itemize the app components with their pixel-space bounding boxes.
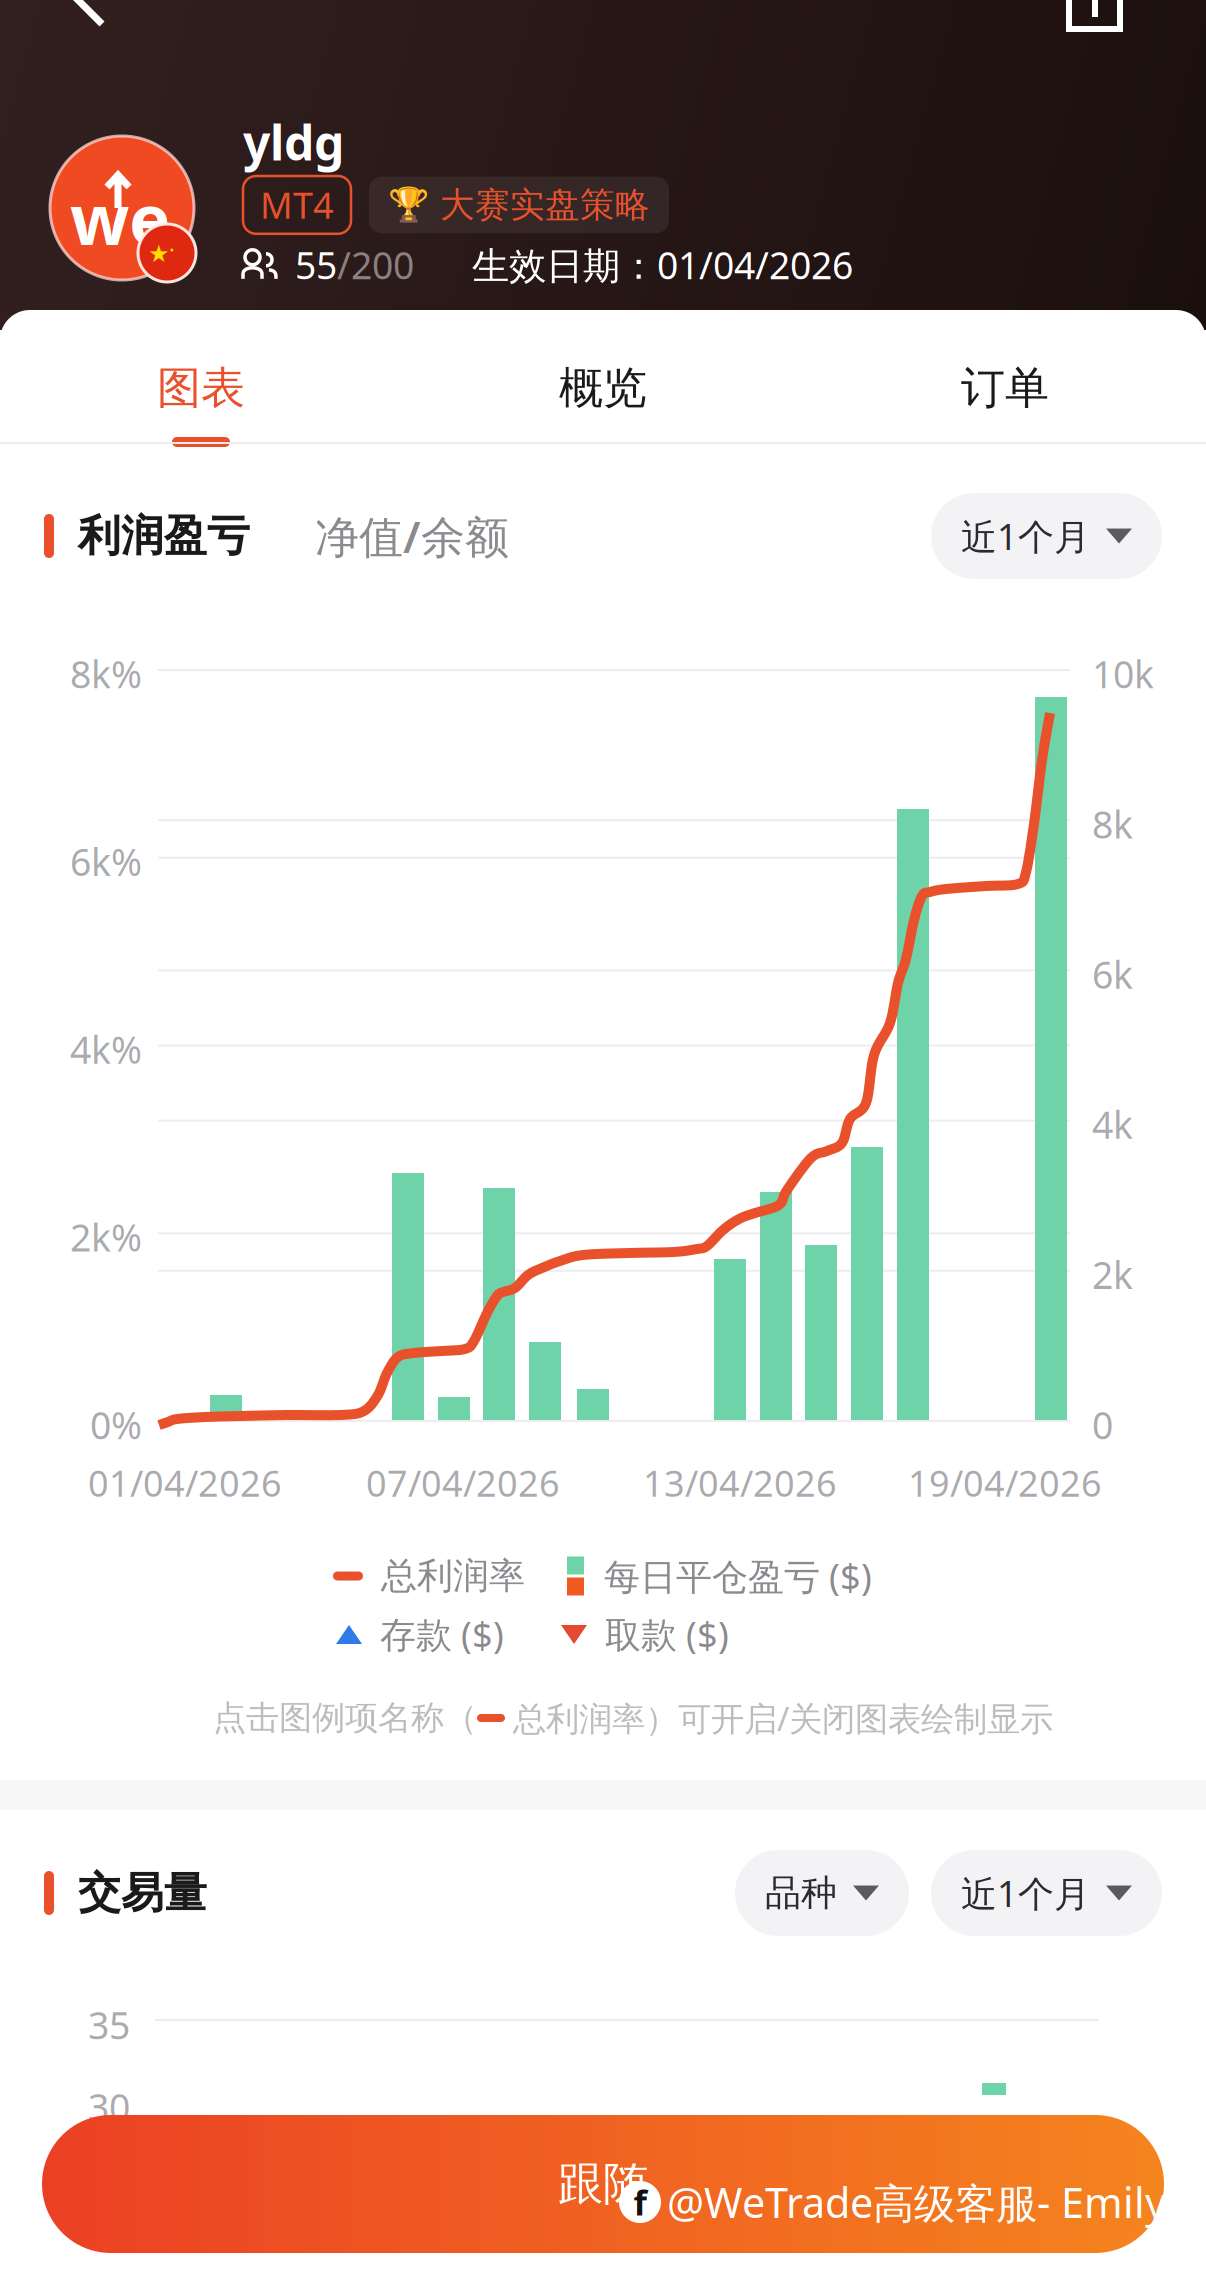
staticText: 交易量	[78, 1867, 207, 1919]
button[interactable]: 总利润率	[333, 1550, 525, 1602]
staticText: 13/04/2026	[643, 1459, 837, 1507]
staticText: 利润盈亏	[78, 510, 250, 562]
button[interactable]: 品种	[735, 1850, 909, 1936]
staticText: 近1个月	[961, 1869, 1090, 1917]
button[interactable]: 图表	[0, 310, 402, 442]
staticText: 总利润率	[381, 1554, 525, 1598]
staticText: 🏆	[388, 186, 430, 224]
staticText: 生效日期：01/04/2026	[472, 240, 853, 290]
button[interactable]: 近1个月	[931, 1850, 1162, 1936]
staticText: 55	[295, 240, 337, 290]
staticText: 概览	[559, 361, 647, 415]
staticText: 19/04/2026	[908, 1459, 1102, 1507]
staticText: 点击图例项名称（	[213, 1697, 477, 1738]
staticText: 存款 ($)	[380, 1610, 504, 1658]
staticText: we	[70, 172, 170, 264]
staticText: 6k	[1092, 949, 1133, 999]
staticText: 8k	[1092, 799, 1133, 849]
staticText: MT4	[260, 181, 334, 229]
button[interactable]: 存款 ($)	[336, 1608, 504, 1660]
button[interactable]: 概览	[402, 310, 804, 442]
button[interactable]: 🏆	[369, 177, 669, 233]
staticText: 近1个月	[961, 512, 1090, 560]
staticText: 2k	[1092, 1250, 1133, 1299]
staticText: 35	[88, 2000, 130, 2050]
staticText: 跟随	[558, 2156, 648, 2212]
staticText: 订单	[961, 361, 1049, 415]
button[interactable]: MT4	[243, 176, 351, 234]
staticText: 01/04/2026	[88, 1459, 282, 1507]
button[interactable]: Share	[1040, 0, 1136, 43]
button[interactable]: 每日平仓盈亏 ($)	[567, 1550, 872, 1602]
button[interactable]: 订单	[804, 310, 1206, 442]
staticText: 30	[88, 2082, 130, 2132]
staticText: 取款 ($)	[605, 1610, 729, 1658]
button[interactable]: 近1个月	[931, 493, 1162, 579]
staticText: 图表	[157, 361, 245, 415]
staticText: 0	[1092, 1400, 1113, 1450]
staticText: 品种	[765, 1871, 837, 1915]
staticText: ★	[148, 240, 170, 267]
staticText: ·	[169, 235, 175, 263]
staticText: 4k%	[70, 1024, 142, 1074]
staticText: 2k%	[70, 1212, 142, 1262]
staticText: @WeTrade高级客服- Emily	[667, 2174, 1166, 2229]
button[interactable]: Back	[40, 0, 136, 42]
button[interactable]: 跟随	[42, 2115, 1164, 2253]
staticText: 6k%	[70, 837, 142, 886]
button[interactable]: 净值/余额	[315, 507, 509, 565]
staticText: /200	[337, 240, 414, 290]
button[interactable]: 取款 ($)	[561, 1608, 729, 1660]
staticText: 8k%	[70, 649, 142, 699]
staticText: 07/04/2026	[366, 1459, 560, 1507]
staticText: 净值/余额	[315, 507, 509, 565]
staticText: 4k	[1092, 1100, 1133, 1149]
staticText: f	[633, 2179, 646, 2225]
staticText: yldg	[243, 110, 344, 174]
staticText: 每日平仓盈亏 ($)	[604, 1552, 872, 1600]
staticText: 0%	[90, 1400, 142, 1450]
staticText: 总利润率）可开启/关闭图表绘制显示	[513, 1696, 1053, 1740]
staticText: 大赛实盘策略	[440, 184, 650, 226]
staticText: 10k	[1092, 649, 1154, 699]
